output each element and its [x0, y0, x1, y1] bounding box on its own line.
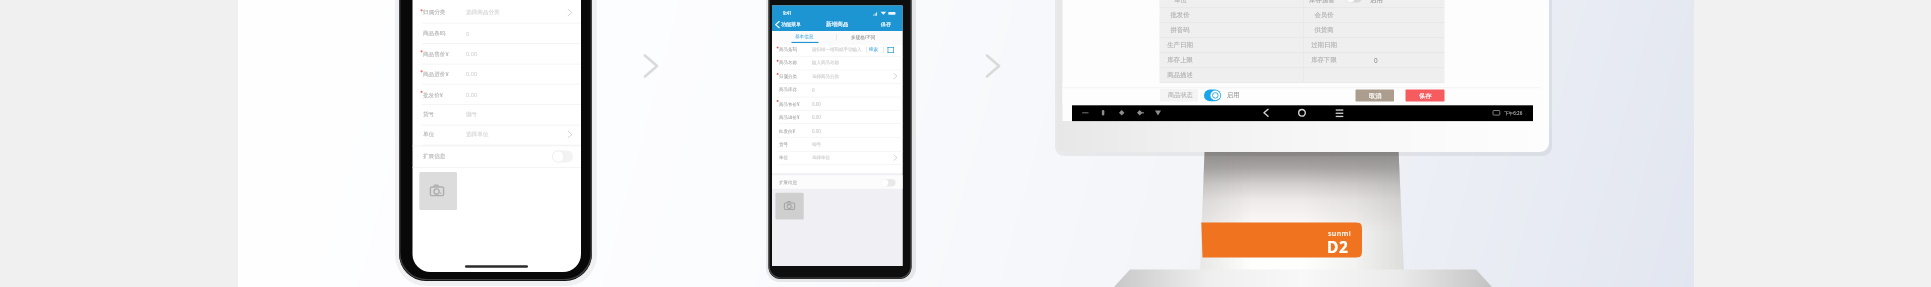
staticText: 选择商品分类: [812, 74, 839, 80]
staticText: 0.00: [466, 50, 478, 58]
staticText: 扩展信息: [779, 180, 797, 186]
staticText: 编号: [466, 111, 478, 118]
staticText: 下午6:26: [1504, 110, 1523, 116]
staticText: 过期日期: [1311, 41, 1337, 49]
staticText: 归属分类: [423, 9, 446, 16]
button[interactable]: Save: [1405, 89, 1445, 102]
staticText: 扩展信息: [423, 153, 446, 160]
button[interactable]: Cancel: [1355, 89, 1394, 102]
staticText: sunmi: [1328, 228, 1352, 238]
staticText: 货号: [779, 142, 788, 148]
staticText: 商品名称: [779, 60, 797, 66]
staticText: 批发价¥: [423, 91, 443, 99]
staticText: 保存: [1419, 92, 1432, 100]
staticText: 单位: [779, 155, 788, 161]
staticText: 搜索: [869, 47, 878, 53]
staticText: 0.00: [466, 91, 478, 99]
staticText: 0.00: [466, 70, 478, 78]
staticText: 0.00: [812, 114, 821, 120]
staticText: 单位: [1174, 0, 1187, 4]
button[interactable]: Save: [874, 19, 902, 33]
staticText: 货号: [423, 111, 435, 118]
staticText: 批发价¥: [779, 128, 796, 134]
staticText: 选择单位: [466, 131, 489, 138]
staticText: 新增商品: [826, 21, 849, 28]
staticText: 功能菜单: [781, 21, 801, 27]
button[interactable]: Add product photo: [777, 196, 804, 219]
staticText: 选择商品分类: [466, 9, 500, 16]
staticText: 归属分类: [779, 74, 797, 80]
staticText: 基本信息: [795, 34, 814, 40]
button[interactable]: Multi spec tab: [837, 33, 902, 44]
staticText: 启用: [1227, 91, 1240, 99]
staticText: 商品库存: [779, 87, 797, 93]
staticText: 库存上限: [1167, 56, 1193, 64]
staticText: 库存预警: [1309, 0, 1335, 4]
button[interactable]: Basic info tab: [772, 33, 837, 44]
staticText: 9:41: [783, 10, 792, 16]
staticText: 输入商品名称: [812, 60, 839, 66]
staticText: 会员价: [1314, 11, 1334, 19]
staticText: 单位: [423, 131, 435, 138]
staticText: 0.00: [812, 101, 821, 107]
staticText: 商品条码: [423, 30, 446, 37]
button[interactable]: Product status toggle: [1204, 89, 1222, 102]
staticText: 商品进价¥: [779, 114, 800, 120]
button[interactable]: Back to function menu: [772, 19, 824, 33]
staticText: 多规格/不同: [851, 34, 876, 40]
staticText: 编号: [812, 142, 821, 148]
staticText: 商品进价¥: [423, 70, 449, 78]
staticText: 商品售价¥: [423, 50, 449, 58]
staticText: 库存下限: [1311, 56, 1337, 64]
staticText: 0: [466, 30, 470, 38]
button[interactable]: Add product photo: [419, 172, 457, 210]
staticText: 选择单位: [812, 155, 830, 161]
staticText: 0: [812, 87, 815, 93]
staticText: 拼音码: [1170, 26, 1190, 34]
staticText: 供货商: [1314, 26, 1334, 34]
staticText: 商品条码: [779, 47, 797, 53]
staticText: 商品售价¥: [779, 101, 800, 107]
staticText: 0.00: [812, 128, 821, 134]
staticText: 启用: [1370, 0, 1383, 4]
staticText: 商品状态: [1168, 91, 1193, 99]
staticText: 生产日期: [1167, 41, 1193, 49]
staticText: 批发价: [1170, 11, 1190, 19]
button[interactable]: Extended info switch: [552, 150, 574, 163]
staticText: 请扫描一维码或手动输入: [812, 47, 862, 53]
staticText: 商品描述: [1167, 71, 1193, 79]
staticText: 取消: [1369, 92, 1382, 100]
staticText: 保存: [881, 21, 891, 27]
staticText: 0: [1374, 56, 1378, 65]
button[interactable]: Extended info switch: [880, 179, 898, 188]
staticText: D2: [1327, 236, 1349, 257]
